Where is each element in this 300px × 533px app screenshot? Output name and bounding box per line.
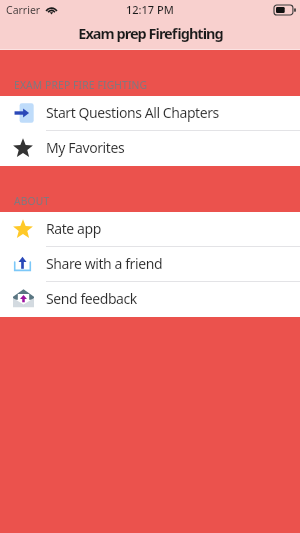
staticText: Start Questions All Chapters: [46, 103, 219, 122]
staticText: ABOUT: [14, 194, 50, 208]
button[interactable]: Send feedback: [0, 282, 300, 317]
button[interactable]: Start Questions All Chapters: [0, 96, 300, 131]
staticText: Send feedback: [46, 289, 137, 308]
staticText: Exam prep Firefighting: [78, 23, 223, 43]
staticText: EXAM PREP FIRE FIGHTING: [14, 78, 148, 92]
staticText: Share with a friend: [46, 254, 163, 273]
staticText: Rate app: [46, 219, 101, 238]
other: Wi-Fi signal: [45, 5, 58, 15]
staticText: 12:17 PM: [126, 2, 174, 17]
staticText: My Favorites: [46, 138, 125, 157]
other: Battery: [274, 5, 296, 15]
staticText: Carrier: [6, 3, 41, 17]
button[interactable]: Share with a friend: [0, 247, 300, 282]
button[interactable]: My Favorites: [0, 131, 300, 166]
button[interactable]: Rate app: [0, 212, 300, 247]
